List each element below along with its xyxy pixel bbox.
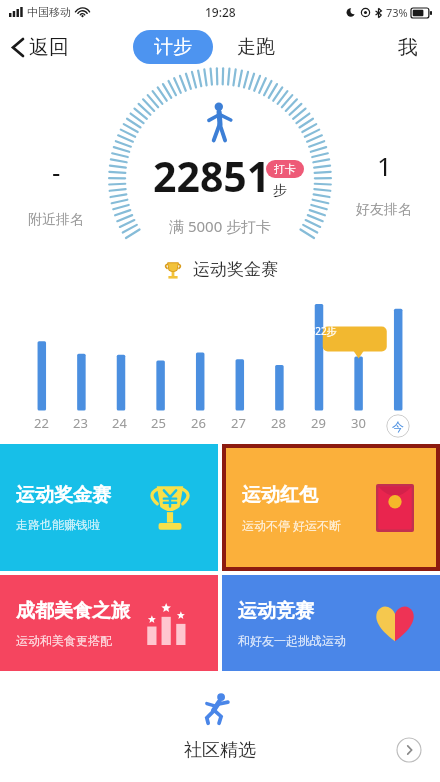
button[interactable]: 走跑 bbox=[229, 30, 283, 64]
staticText: 23 bbox=[73, 414, 88, 432]
staticText: 26 bbox=[191, 414, 206, 432]
button[interactable]: 打卡 bbox=[266, 160, 304, 178]
staticText: 运动奖金赛 bbox=[16, 483, 111, 507]
button[interactable]: More bbox=[396, 737, 422, 763]
button[interactable]: 运动奖金赛 bbox=[146, 253, 295, 286]
staticText: 27 bbox=[231, 414, 246, 432]
staticText: 和好友一起挑战运动 bbox=[238, 633, 346, 648]
staticText: 社区精选 bbox=[184, 739, 256, 762]
button[interactable]: 运动竞赛 bbox=[222, 575, 440, 671]
staticText: 22 bbox=[34, 414, 49, 432]
staticText: 计步 bbox=[154, 35, 192, 59]
staticText: 中国移动 bbox=[27, 5, 71, 19]
staticText: 73% bbox=[386, 5, 408, 20]
staticText: 19:28 bbox=[205, 4, 236, 20]
staticText: 今 bbox=[392, 419, 404, 434]
staticText: 22851 bbox=[153, 148, 271, 204]
staticText: 走跑 bbox=[237, 35, 275, 59]
staticText: 运动红包 bbox=[242, 483, 318, 507]
staticText: 步 bbox=[273, 182, 287, 200]
staticText: 打卡 bbox=[274, 162, 296, 176]
staticText: 运动奖金赛 bbox=[193, 259, 278, 280]
staticText: 29 bbox=[311, 414, 326, 432]
button[interactable]: 运动红包 bbox=[226, 448, 436, 567]
button[interactable]: 成都美食之旅 bbox=[0, 575, 218, 671]
button[interactable]: Start run bbox=[186, 678, 248, 740]
button[interactable]: 返回 bbox=[0, 27, 81, 68]
staticText: 12322步 bbox=[298, 324, 337, 338]
staticText: 走路也能赚钱啦 bbox=[16, 517, 100, 532]
staticText: 附近排名 bbox=[28, 211, 84, 229]
button[interactable]: 我 bbox=[376, 27, 440, 68]
staticText: 好友排名 bbox=[356, 201, 412, 219]
button[interactable]: 运动奖金赛 bbox=[0, 444, 218, 571]
staticText: 返回 bbox=[29, 35, 69, 60]
staticText: 24 bbox=[112, 414, 127, 432]
button[interactable]: 今 bbox=[386, 414, 410, 438]
staticText: - bbox=[52, 154, 61, 189]
staticText: 运动和美食更搭配 bbox=[16, 633, 112, 648]
staticText: 运动竞赛 bbox=[238, 599, 314, 623]
staticText: 运动不停 好运不断 bbox=[242, 517, 342, 533]
staticText: 1 bbox=[377, 148, 392, 183]
staticText: 30 bbox=[351, 414, 366, 432]
button[interactable]: 社区精选 bbox=[176, 731, 264, 770]
staticText: 28 bbox=[271, 414, 286, 432]
staticText: 我 bbox=[398, 35, 418, 60]
staticText: 成都美食之旅 bbox=[16, 599, 130, 623]
button[interactable]: 计步 bbox=[133, 30, 213, 64]
staticText: 25 bbox=[151, 414, 166, 432]
staticText: 满 5000 步打卡 bbox=[169, 216, 272, 236]
